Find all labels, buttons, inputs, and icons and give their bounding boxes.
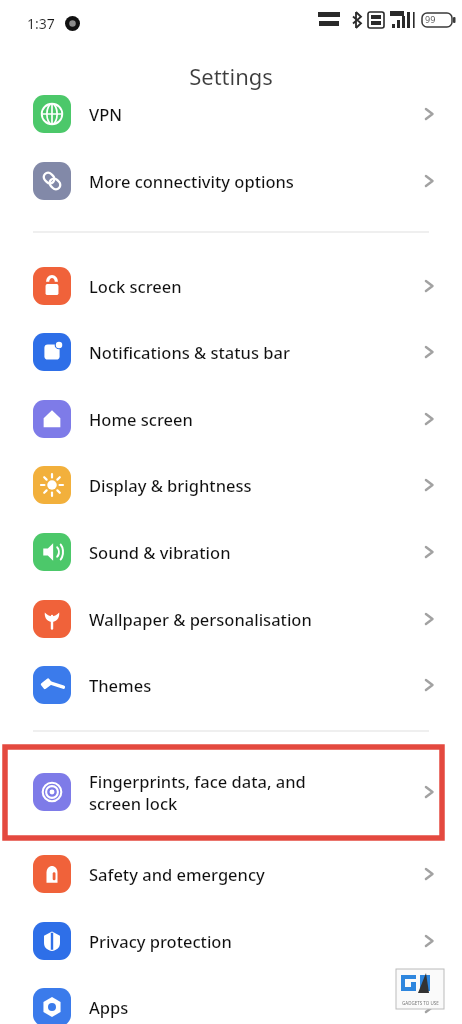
staticText: Notifications & status bar bbox=[89, 341, 290, 363]
button[interactable]: Sound & vibration bbox=[0, 521, 462, 583]
staticText: Sound & vibration bbox=[89, 541, 231, 563]
button[interactable]: Wallpaper & personalisation bbox=[0, 588, 462, 650]
staticText: VPN bbox=[89, 103, 123, 125]
staticText: 1:37 bbox=[27, 14, 55, 33]
staticText: Themes bbox=[89, 674, 152, 696]
button[interactable]: Safety and emergency bbox=[0, 843, 462, 905]
button[interactable]: Home screen bbox=[0, 388, 462, 450]
button[interactable]: Notifications & status bar bbox=[0, 321, 462, 383]
button[interactable]: Display & brightness bbox=[0, 454, 462, 516]
staticText: screen lock bbox=[89, 792, 178, 814]
staticText: Apps bbox=[89, 996, 129, 1018]
staticText: Wallpaper & personalisation bbox=[89, 608, 312, 630]
staticText: Safety and emergency bbox=[89, 863, 265, 885]
staticText: Fingerprints, face data, and bbox=[89, 770, 306, 792]
button[interactable]: More connectivity options bbox=[0, 150, 462, 212]
button[interactable]: Privacy protection bbox=[0, 910, 462, 972]
button[interactable]: Apps bbox=[0, 976, 462, 1024]
staticText: Home screen bbox=[89, 408, 193, 430]
button[interactable]: Lock screen bbox=[0, 255, 462, 317]
button[interactable]: VPN bbox=[0, 83, 462, 145]
staticText: 99 bbox=[425, 13, 436, 25]
staticText: Privacy protection bbox=[89, 930, 232, 952]
staticText: Display & brightness bbox=[89, 474, 252, 496]
staticText: Lock screen bbox=[89, 275, 182, 297]
button[interactable]: Themes bbox=[0, 654, 462, 716]
staticText: GADGETS TO USE bbox=[402, 1000, 439, 1006]
staticText: Settings bbox=[0, 61, 462, 91]
button[interactable]: Fingerprints, face data, and bbox=[0, 756, 462, 828]
staticText: More connectivity options bbox=[89, 170, 294, 192]
